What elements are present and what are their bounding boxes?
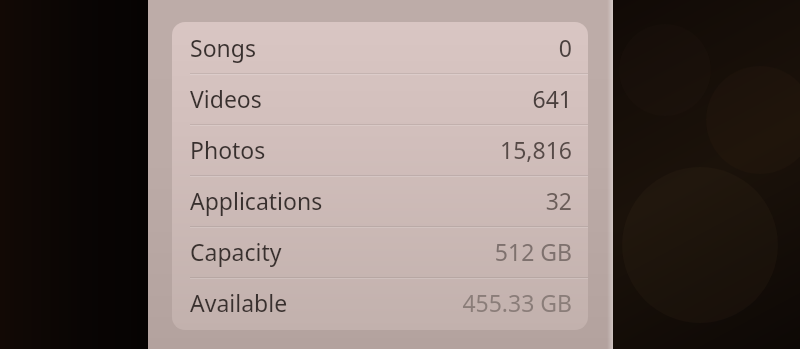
staticText: 15,816	[500, 134, 572, 165]
button[interactable]: Videos	[172, 73, 588, 124]
staticText: Videos	[190, 83, 262, 114]
staticText: 0	[558, 32, 572, 63]
button[interactable]: Songs	[172, 22, 588, 73]
button[interactable]: Photos	[172, 124, 588, 175]
button[interactable]: Capacity	[172, 226, 588, 277]
staticText: Capacity	[190, 236, 282, 267]
button[interactable]: Available	[172, 277, 588, 328]
staticText: Available	[190, 287, 288, 318]
staticText: 455.33 GB	[462, 287, 572, 318]
staticText: 512 GB	[494, 236, 572, 267]
button[interactable]: Applications	[172, 175, 588, 226]
staticText: Songs	[190, 32, 256, 63]
staticText: Photos	[190, 134, 266, 165]
staticText: Applications	[190, 185, 323, 216]
staticText: 641	[532, 83, 572, 114]
staticText: 32	[545, 185, 572, 216]
